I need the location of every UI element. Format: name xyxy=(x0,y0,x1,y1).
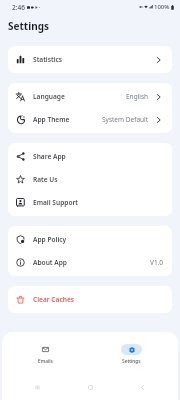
staticText: Settings xyxy=(122,358,141,365)
button[interactable]: App Policy xyxy=(8,228,172,251)
button[interactable]: Statistics xyxy=(8,48,172,71)
button[interactable]: Rate Us xyxy=(8,168,172,191)
button[interactable]: App Theme xyxy=(8,108,172,131)
staticText: Language xyxy=(33,92,65,101)
staticText: Rate Us xyxy=(33,175,58,184)
staticText: Clear Caches xyxy=(33,295,75,304)
other: Home xyxy=(88,385,93,390)
staticText: English xyxy=(126,92,149,101)
button[interactable]: Share App xyxy=(8,145,172,168)
staticText: App Policy xyxy=(33,235,67,244)
staticText: App Theme xyxy=(33,115,70,124)
button[interactable]: Clear Caches xyxy=(8,288,172,311)
other: Recents xyxy=(35,385,40,390)
staticText: Share App xyxy=(33,152,66,161)
staticText: Statistics xyxy=(33,55,63,64)
staticText: Emails xyxy=(38,358,53,365)
staticText: About App xyxy=(33,258,67,267)
staticText: Settings xyxy=(8,19,49,33)
button[interactable]: About App xyxy=(8,251,172,274)
button[interactable]: Emails xyxy=(29,344,62,365)
staticText: Email Support xyxy=(33,198,79,207)
staticText: V1.0 xyxy=(150,258,164,267)
other: Back xyxy=(140,385,145,390)
staticText: 2:46 xyxy=(12,3,25,12)
button[interactable]: Settings xyxy=(115,344,148,365)
button[interactable]: Language xyxy=(8,85,172,108)
staticText: System Default xyxy=(102,115,149,124)
button[interactable]: Email Support xyxy=(8,191,172,214)
staticText: 100% xyxy=(154,3,170,11)
